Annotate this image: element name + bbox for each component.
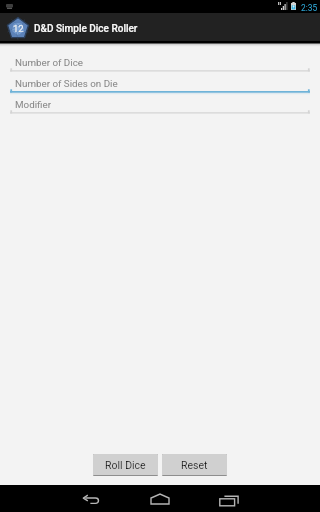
button[interactable]: Back xyxy=(70,485,114,512)
button[interactable]: Number of Sides on Die xyxy=(0,78,320,98)
staticText: Number of Dice xyxy=(15,57,83,68)
staticText: Modifier xyxy=(15,99,51,110)
button[interactable]: Roll Dice xyxy=(93,454,158,475)
staticText: 12 xyxy=(13,23,24,34)
staticText: Reset xyxy=(181,459,208,471)
staticText: Number of Sides on Die xyxy=(15,78,118,89)
button[interactable]: Number of Dice xyxy=(0,57,320,77)
button[interactable]: Modifier xyxy=(0,99,320,119)
button[interactable]: Reset xyxy=(162,454,227,475)
staticText: Roll Dice xyxy=(105,459,146,471)
button[interactable]: Recent apps xyxy=(206,485,250,512)
staticText: D&D Simple Dice Roller xyxy=(34,23,138,35)
staticText: 2:35 xyxy=(301,3,318,13)
button[interactable]: Home xyxy=(138,485,182,512)
